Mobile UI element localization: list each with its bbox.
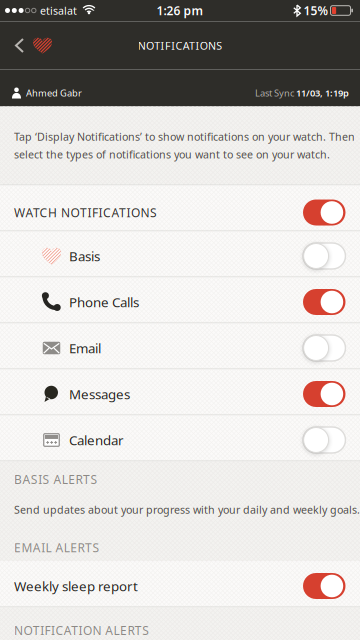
staticText: Tap ‘Display Notifications’ to show noti…: [14, 130, 355, 144]
staticText: Calendar: [69, 431, 124, 449]
staticText: Last Sync: [255, 87, 296, 99]
button[interactable]: Email: [0, 323, 360, 369]
staticText: select the types of notifications you wa…: [14, 147, 330, 161]
button[interactable]: WATCH NOTIFICATIONS: [0, 185, 360, 231]
staticText: Weekly sleep report: [14, 577, 138, 595]
staticText: etisalat: [40, 3, 77, 18]
staticText: EMAIL ALERTS: [14, 540, 99, 555]
button[interactable]: Weekly sleep report: [0, 561, 360, 607]
staticText: Ahmed Gabr: [26, 87, 82, 99]
staticText: Phone Calls: [69, 293, 139, 311]
button[interactable]: Basis: [0, 231, 360, 277]
staticText: NOTIFICATIONS: [138, 38, 222, 53]
button[interactable]: Messages: [0, 369, 360, 415]
staticText: NOTIFICATION ALERTS: [14, 622, 149, 638]
staticText: 11/03, 1:19p: [296, 87, 349, 99]
button[interactable]: Phone Calls: [0, 277, 360, 323]
staticText: Basis: [69, 247, 100, 265]
staticText: 15%: [303, 2, 328, 18]
staticText: WATCH NOTIFICATIONS: [14, 204, 157, 220]
staticText: 1:26 pm: [156, 2, 203, 18]
button[interactable]: Calendar: [0, 415, 360, 461]
staticText: Send updates about your progress with yo…: [14, 502, 360, 517]
button[interactable]: Back: [0, 28, 24, 62]
staticText: Messages: [69, 385, 130, 403]
staticText: Email: [69, 339, 101, 357]
staticText: BASIS ALERTS: [14, 471, 97, 487]
